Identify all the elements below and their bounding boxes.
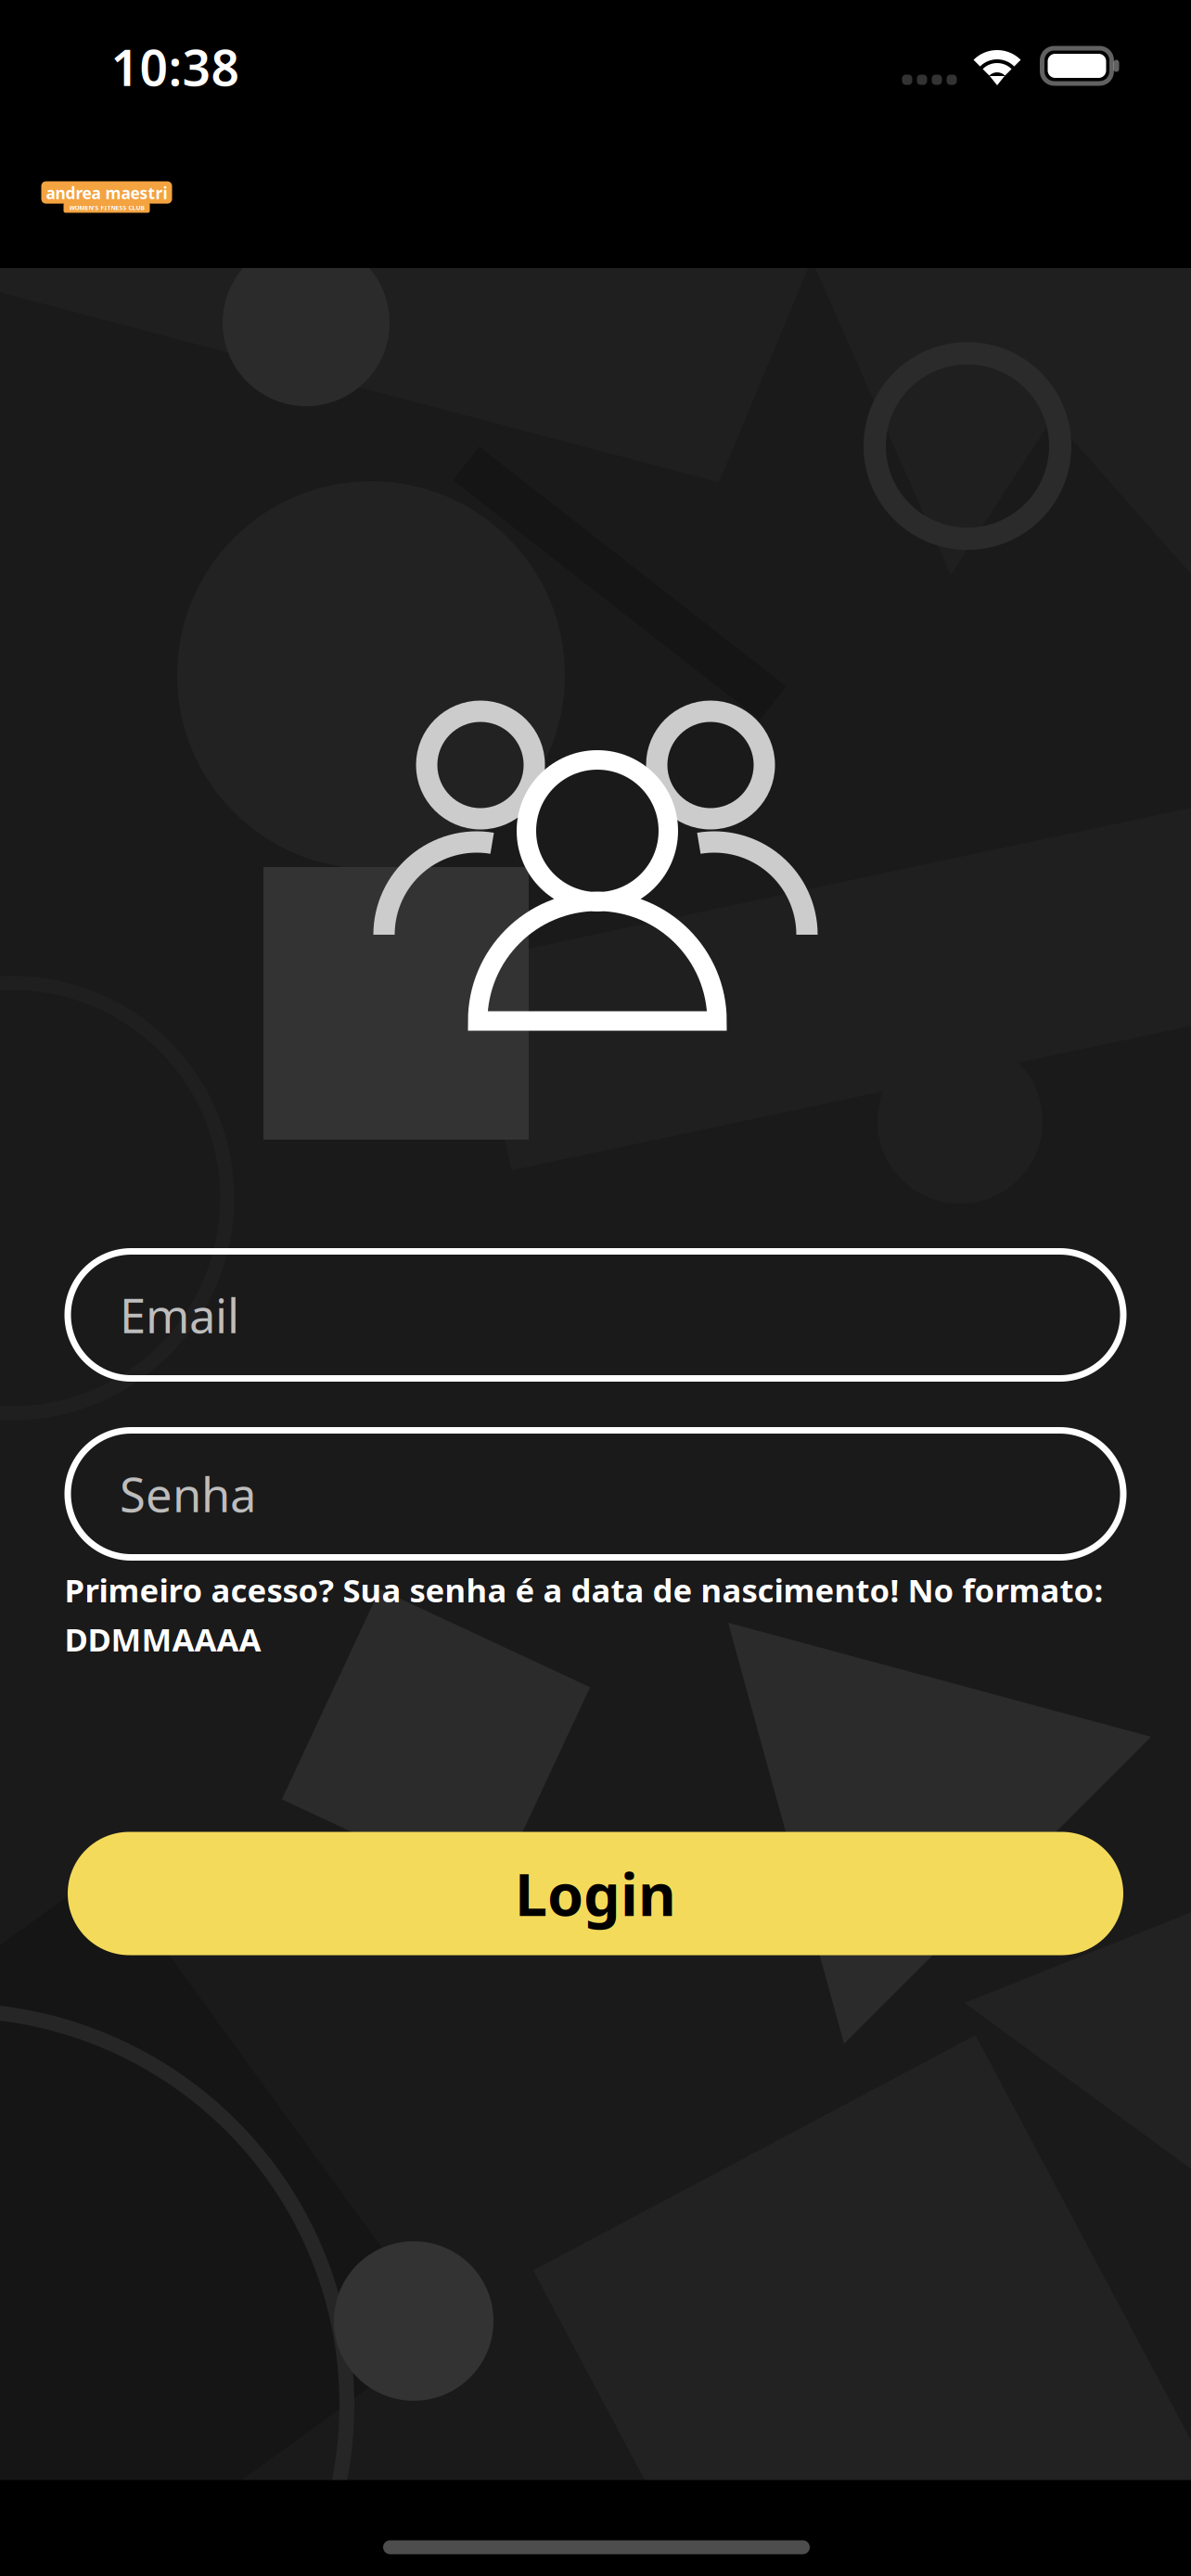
staticText: Senha: [120, 1463, 256, 1525]
staticText: WOMEN'S FITNESS CLUB: [69, 204, 144, 212]
staticText: andrea maestri: [46, 182, 167, 204]
button[interactable]: Email: [68, 1251, 1123, 1378]
button[interactable]: Senha: [68, 1430, 1123, 1557]
button[interactable]: Login: [68, 1832, 1123, 1955]
staticText: 10:38: [111, 34, 240, 100]
staticText: Primeiro acesso? Sua senha é a data de n…: [64, 1569, 1103, 1611]
staticText: Email: [120, 1284, 239, 1346]
staticText: DDMMAAAA: [64, 1618, 261, 1660]
staticText: Login: [515, 1855, 676, 1932]
